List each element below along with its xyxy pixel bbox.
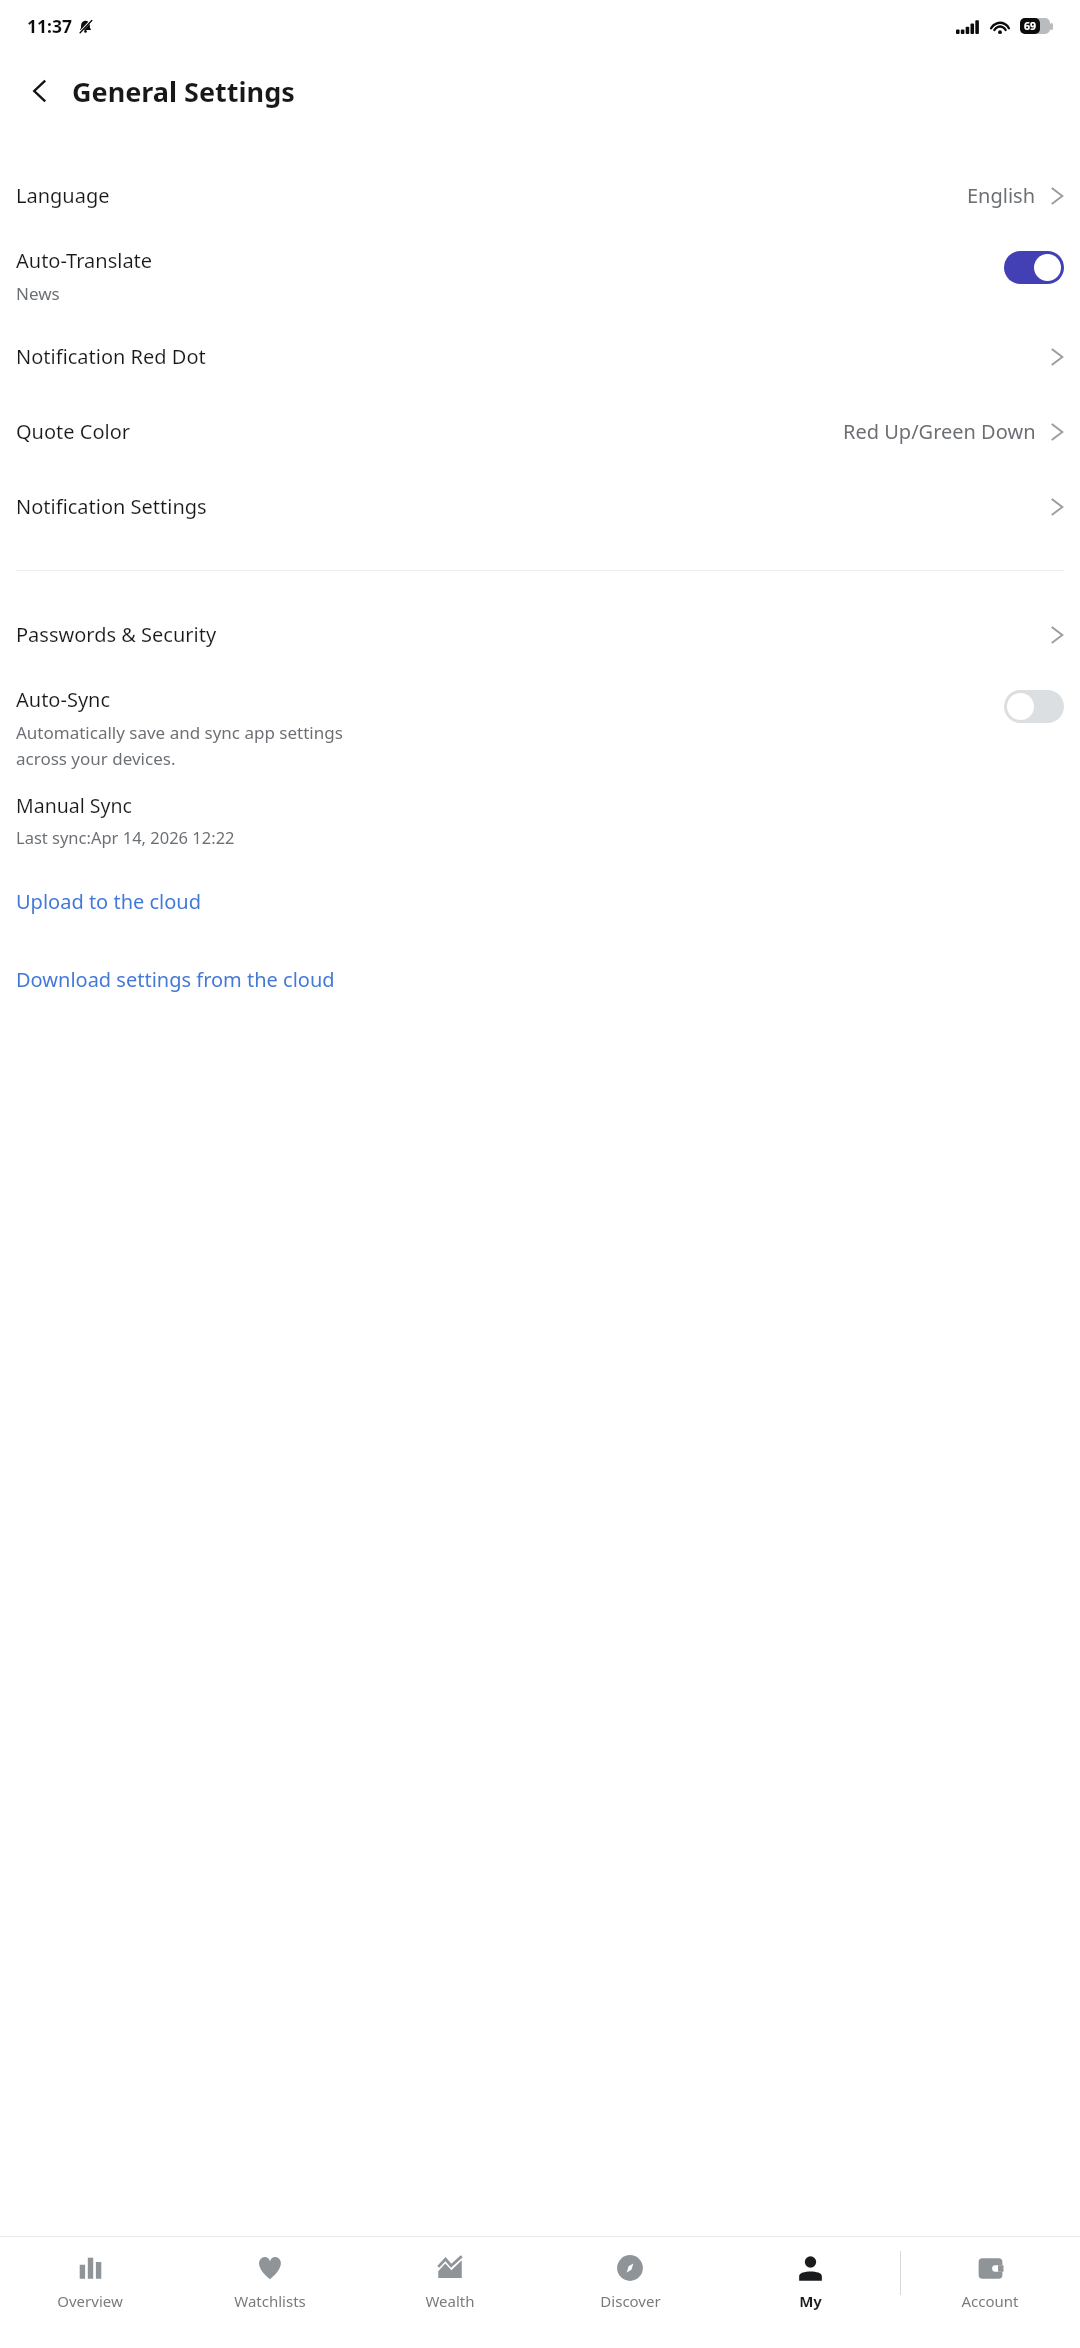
button[interactable]: Auto-Sync [0,672,1080,784]
button[interactable]: Back [14,65,66,117]
staticText: Discover [600,2291,661,2311]
staticText: Last sync:Apr 14, 2026 12:22 [16,826,235,848]
staticText: Notification Settings [16,493,207,520]
staticText: Account [961,2291,1019,2311]
button[interactable]: Upload to the cloud [0,880,1080,923]
staticText: Language [16,182,110,209]
button[interactable]: Quote Color [0,394,1080,469]
button[interactable]: Manual Sync [0,784,1080,854]
button[interactable]: Download settings from the cloud [0,958,1080,1001]
button[interactable]: Toggle off [1004,690,1064,723]
staticText: English [967,182,1036,209]
staticText: General Settings [72,73,295,110]
button[interactable]: My [720,2237,900,2311]
button[interactable]: Notification Settings [0,469,1080,544]
staticText: Manual Sync [16,792,132,819]
button[interactable]: Language [0,158,1080,233]
staticText: My [799,2291,822,2311]
staticText: Notification Red Dot [16,343,206,370]
staticText: Download settings from the cloud [16,966,335,993]
staticText: Watchlists [234,2291,306,2311]
staticText: Wealth [425,2291,475,2311]
staticText: Auto-Sync [16,686,111,713]
staticText: Automatically save and sync app settings… [16,721,343,770]
button[interactable]: Watchlists [180,2237,360,2311]
button[interactable]: Wealth [360,2237,540,2311]
staticText: Passwords & Security [16,621,217,648]
staticText: 69 [1024,19,1037,33]
staticText: Quote Color [16,418,131,445]
button[interactable]: Notification Red Dot [0,319,1080,394]
button[interactable]: Overview [0,2237,180,2311]
button[interactable]: Passwords & Security [0,597,1080,672]
button[interactable]: Discover [540,2237,720,2311]
staticText: Overview [57,2291,123,2311]
staticText: Red Up/Green Down [843,418,1036,445]
button[interactable]: Toggle on [1004,251,1064,284]
button[interactable]: Auto-Translate [0,233,1080,319]
staticText: 11:37 [27,14,72,38]
button[interactable]: Account [900,2237,1080,2311]
staticText: News [16,282,60,305]
staticText: Upload to the cloud [16,888,201,915]
staticText: Auto-Translate [16,247,153,274]
